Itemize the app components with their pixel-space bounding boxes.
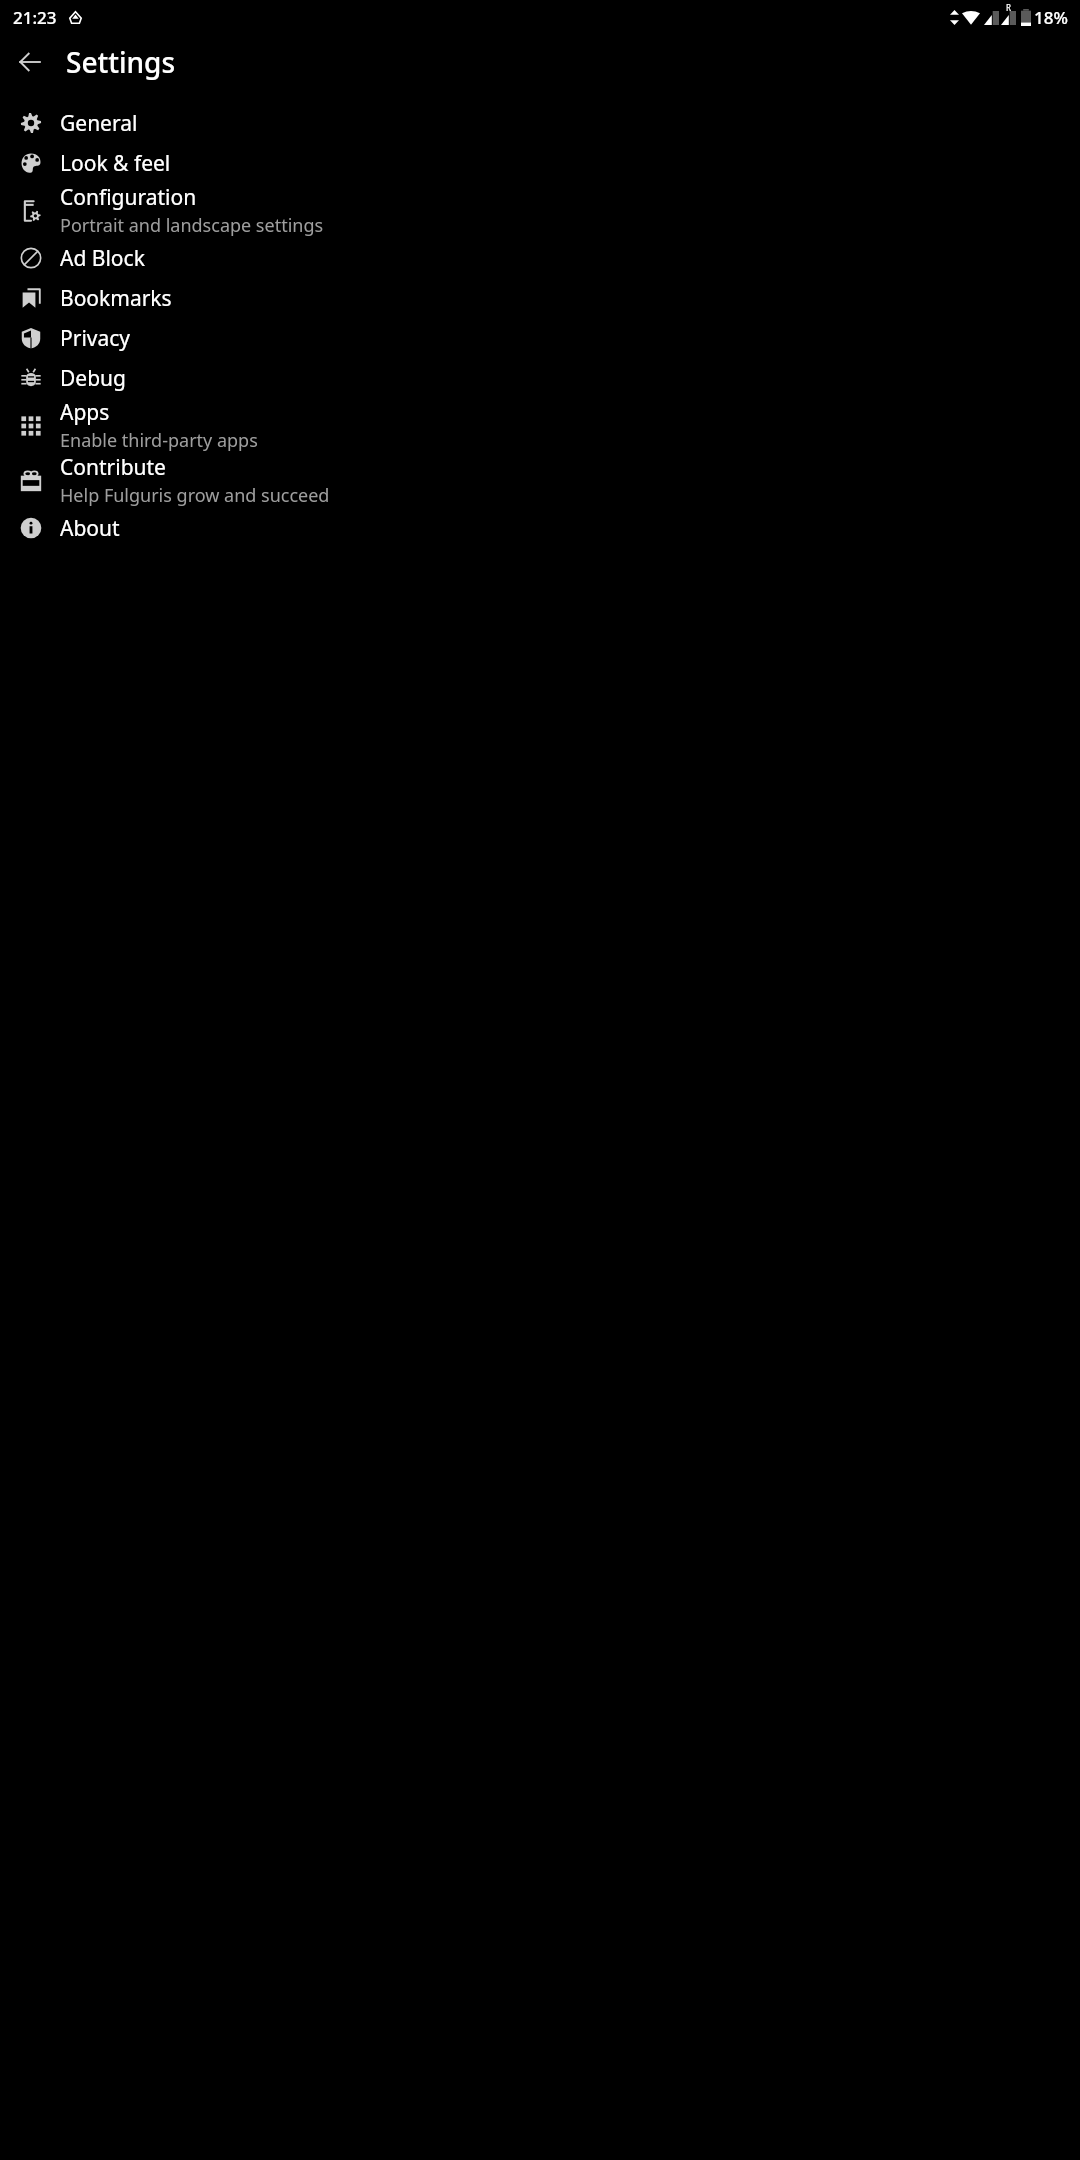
staticText: Help Fulguris grow and succeed bbox=[60, 483, 330, 508]
staticText: General bbox=[60, 109, 138, 138]
staticText: Configuration bbox=[60, 183, 197, 212]
staticText: Contribute bbox=[60, 453, 166, 482]
button[interactable]: Look & feel bbox=[0, 143, 1080, 183]
button[interactable]: Back bbox=[6, 38, 54, 86]
staticText: Bookmarks bbox=[60, 284, 172, 313]
staticText: 21:23 bbox=[13, 6, 57, 29]
button[interactable]: Privacy bbox=[0, 318, 1080, 358]
button[interactable]: General bbox=[0, 103, 1080, 143]
staticText: Ad Block bbox=[60, 244, 145, 273]
button[interactable]: Apps bbox=[0, 398, 1080, 453]
staticText: Look & feel bbox=[60, 149, 171, 178]
button[interactable]: Bookmarks bbox=[0, 278, 1080, 318]
staticText: Debug bbox=[60, 364, 126, 393]
staticText: About bbox=[60, 514, 120, 543]
staticText: Privacy bbox=[60, 324, 131, 353]
staticText: Enable third-party apps bbox=[60, 428, 258, 453]
staticText: 18% bbox=[1034, 6, 1068, 29]
button[interactable]: Contribute bbox=[0, 453, 1080, 508]
button[interactable]: About bbox=[0, 508, 1080, 548]
button[interactable]: Ad Block bbox=[0, 238, 1080, 278]
staticText: Portrait and landscape settings bbox=[60, 213, 324, 238]
button[interactable]: Configuration bbox=[0, 183, 1080, 238]
button[interactable]: Debug bbox=[0, 358, 1080, 398]
staticText: Apps bbox=[60, 398, 110, 427]
staticText: Settings bbox=[66, 43, 176, 81]
staticText: R bbox=[1006, 2, 1011, 13]
